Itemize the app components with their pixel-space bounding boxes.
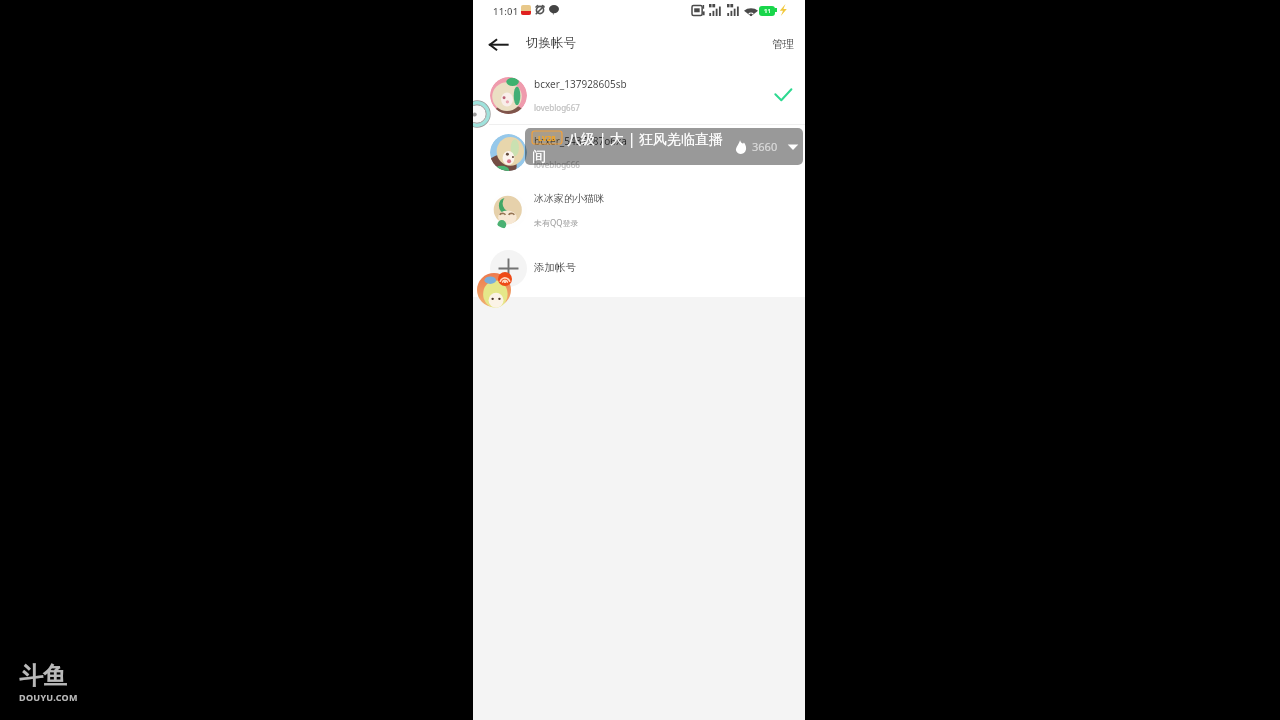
staticText: bcxer_137928605sb [534,77,627,91]
button[interactable]: LV28 [525,128,803,165]
staticText: loveblog666 [534,159,580,170]
staticText: 八级 | 大 | 狂风羌临直播间 [532,129,732,165]
button[interactable]: 添加帐号 [473,241,805,297]
staticText: bcxer_5437287o6xa [534,134,627,148]
staticText: 添加帐号 [534,261,576,274]
staticText: 11:01 [493,5,519,18]
staticText: 冰冰家的小猫咪 [534,192,604,205]
button[interactable]: Selected account [771,83,795,107]
button[interactable]: 管理 [772,37,794,51]
button[interactable]: Floating assistant [473,100,491,128]
button[interactable]: Live stream bubble [477,273,511,307]
staticText: DOUYU.COM [19,691,78,703]
button[interactable]: 冰冰家的小猫咪 [473,183,805,241]
button[interactable]: Back [487,32,511,56]
staticText: 11 [764,7,771,15]
staticText: loveblog667 [534,102,580,113]
staticText: 切换帐号 [526,35,576,51]
button[interactable]: bcxer_5437287o6xa [473,125,805,183]
staticText: 3660 [752,139,778,154]
staticText: 未有QQ登录 [534,217,579,228]
staticText: LV28 [538,133,556,143]
button[interactable]: bcxer_137928605sb [473,60,805,124]
staticText: 管理 [772,37,794,51]
staticText: 斗鱼 [19,661,67,691]
